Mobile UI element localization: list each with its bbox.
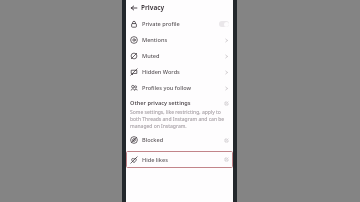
staticText: Mentions xyxy=(142,36,168,44)
button[interactable]: Private profile toggle xyxy=(219,21,229,27)
button[interactable]: Hidden Words xyxy=(126,64,233,80)
button[interactable]: Muted xyxy=(126,48,233,64)
staticText: Muted xyxy=(142,52,160,60)
staticText: Profiles you follow xyxy=(142,84,192,92)
staticText: Some settings, like restricting, apply t… xyxy=(130,109,229,130)
staticText: Hide likes xyxy=(142,156,168,164)
button[interactable]: Blocked xyxy=(126,132,233,148)
button[interactable]: Profiles you follow xyxy=(126,80,233,96)
staticText: Hidden Words xyxy=(142,68,180,76)
button[interactable]: Private profile xyxy=(126,16,233,32)
button[interactable]: Other privacy settings xyxy=(130,99,229,107)
staticText: Private profile xyxy=(142,20,180,28)
button[interactable]: Hide likes xyxy=(126,151,233,168)
staticText: Other privacy settings xyxy=(130,99,191,107)
staticText: Privacy xyxy=(141,3,165,12)
button[interactable]: Mentions xyxy=(126,32,233,48)
staticText: Blocked xyxy=(142,136,164,144)
button[interactable]: Back xyxy=(129,3,139,13)
